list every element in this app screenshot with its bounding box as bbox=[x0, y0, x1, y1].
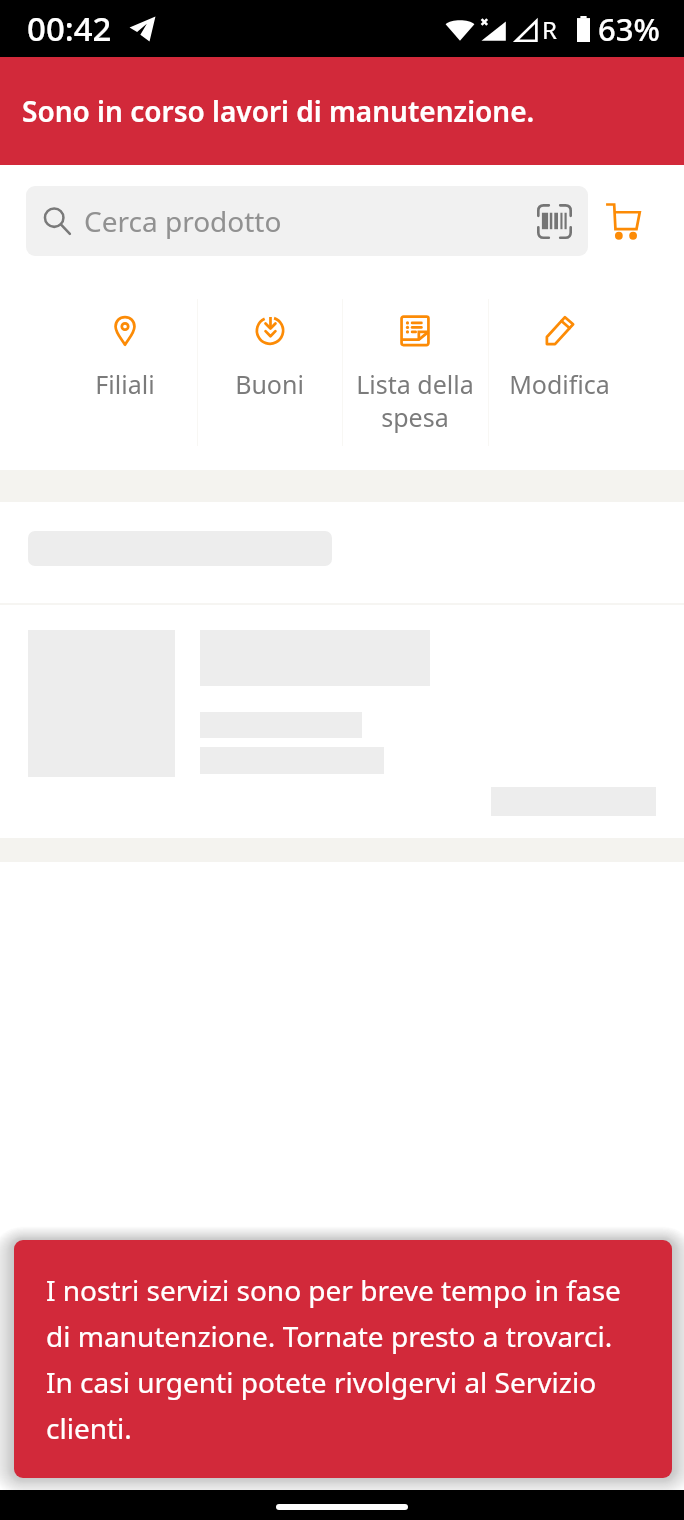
button[interactable]: Filiali bbox=[52, 280, 197, 470]
staticText: Buoni bbox=[235, 367, 304, 401]
staticText: 00:42 bbox=[27, 6, 112, 51]
staticText: R bbox=[542, 13, 557, 46]
button[interactable]: Sono in corso lavori di manutenzione. bbox=[0, 57, 684, 165]
staticText: Sono in corso lavori di manutenzione. bbox=[22, 92, 535, 130]
button[interactable]: Cerca prodotto bbox=[26, 186, 588, 256]
button[interactable]: Buoni bbox=[197, 280, 342, 470]
button[interactable]: Lista della spesa bbox=[342, 280, 487, 470]
button[interactable]: Scan barcode bbox=[523, 190, 585, 252]
staticText: Filiali bbox=[95, 367, 155, 401]
staticText: I nostri servizi sono per breve tempo in… bbox=[46, 1271, 634, 1448]
button[interactable]: Shopping cart bbox=[588, 186, 658, 256]
staticText: Modifica bbox=[509, 367, 610, 401]
button[interactable]: I nostri servizi sono per breve tempo in… bbox=[14, 1240, 672, 1478]
staticText: Lista della spesa bbox=[356, 367, 474, 434]
button[interactable]: Modifica bbox=[487, 280, 632, 470]
staticText: Cerca prodotto bbox=[84, 202, 282, 240]
staticText: 63% bbox=[598, 8, 660, 50]
